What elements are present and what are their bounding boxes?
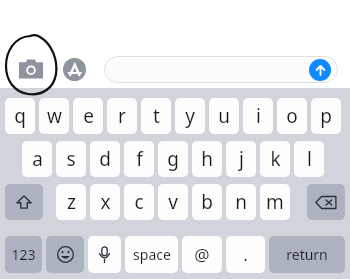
staticText: i bbox=[256, 103, 261, 129]
button[interactable]: n bbox=[226, 184, 256, 220]
staticText: m bbox=[266, 189, 284, 215]
staticText: u bbox=[218, 103, 230, 129]
staticText: a bbox=[32, 146, 43, 172]
staticText: r bbox=[118, 103, 126, 129]
staticText: x bbox=[100, 189, 111, 215]
button[interactable]: Dictate bbox=[88, 236, 121, 273]
staticText: t bbox=[153, 103, 160, 129]
staticText: b bbox=[201, 189, 213, 215]
staticText: y bbox=[185, 103, 195, 129]
button[interactable]: return bbox=[269, 236, 345, 273]
button[interactable]: h bbox=[192, 141, 222, 177]
staticText: c bbox=[134, 189, 144, 215]
button[interactable]: i bbox=[243, 98, 273, 134]
staticText: g bbox=[167, 146, 179, 172]
button[interactable]: Camera bbox=[17, 57, 45, 81]
button[interactable]: m bbox=[260, 184, 290, 220]
button[interactable]: k bbox=[260, 141, 290, 177]
staticText: p bbox=[320, 103, 332, 129]
staticText: space bbox=[133, 245, 171, 264]
staticText: j bbox=[239, 146, 244, 172]
button[interactable]: c bbox=[124, 184, 154, 220]
button[interactable]: s bbox=[56, 141, 86, 177]
button[interactable]: Shift bbox=[5, 184, 43, 220]
button[interactable]: e bbox=[73, 98, 103, 134]
button[interactable]: d bbox=[90, 141, 120, 177]
button[interactable]: o bbox=[277, 98, 307, 134]
staticText: f bbox=[136, 146, 143, 172]
button[interactable]: b bbox=[192, 184, 222, 220]
button[interactable]: l bbox=[294, 141, 324, 177]
button[interactable]: . bbox=[226, 236, 265, 273]
button[interactable]: x bbox=[90, 184, 120, 220]
staticText: s bbox=[66, 146, 76, 172]
staticText: 123 bbox=[11, 245, 36, 264]
button[interactable]: Emoji bbox=[46, 236, 84, 273]
staticText: d bbox=[99, 146, 111, 172]
staticText: l bbox=[307, 146, 312, 172]
button[interactable]: y bbox=[175, 98, 205, 134]
button[interactable]: j bbox=[226, 141, 256, 177]
button[interactable]: Send bbox=[309, 59, 331, 81]
button[interactable]: p bbox=[311, 98, 341, 134]
staticText: h bbox=[201, 146, 213, 172]
button[interactable]: z bbox=[56, 184, 86, 220]
button[interactable]: a bbox=[22, 141, 52, 177]
staticText: w bbox=[47, 103, 62, 129]
button[interactable]: @ bbox=[182, 236, 222, 273]
staticText: . bbox=[243, 243, 248, 266]
button[interactable]: u bbox=[209, 98, 239, 134]
staticText: q bbox=[14, 103, 26, 129]
staticText: z bbox=[67, 189, 76, 215]
staticText: e bbox=[83, 103, 94, 129]
staticText: return bbox=[286, 245, 328, 264]
button[interactable]: v bbox=[158, 184, 188, 220]
button[interactable]: r bbox=[107, 98, 137, 134]
button[interactable]: q bbox=[5, 98, 35, 134]
button[interactable]: space bbox=[125, 236, 178, 273]
button[interactable]: 123 bbox=[5, 236, 42, 273]
button[interactable]: f bbox=[124, 141, 154, 177]
button[interactable] bbox=[104, 56, 338, 83]
staticText: v bbox=[168, 189, 178, 215]
button[interactable]: App Store bbox=[63, 58, 86, 81]
staticText: k bbox=[270, 146, 281, 172]
button[interactable]: w bbox=[39, 98, 69, 134]
button[interactable]: g bbox=[158, 141, 188, 177]
button[interactable]: Backspace bbox=[307, 184, 345, 220]
button[interactable]: t bbox=[141, 98, 171, 134]
staticText: o bbox=[286, 103, 298, 129]
staticText: n bbox=[235, 189, 247, 215]
staticText: @ bbox=[194, 243, 210, 266]
